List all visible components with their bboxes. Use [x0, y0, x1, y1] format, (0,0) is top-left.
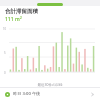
- button[interactable]: Selected tab indicator: [37, 3, 63, 6]
- other: Record icon: [5, 92, 10, 97]
- button[interactable]: Bar chart of recent 30 records: [0, 26, 100, 80]
- other: Open details: [90, 92, 95, 97]
- staticText: 5: [4, 51, 6, 55]
- staticText: 111 m: [5, 16, 20, 23]
- staticText: 0: [4, 71, 6, 75]
- staticText: 10: [3, 27, 7, 31]
- staticText: 2: [20, 16, 22, 20]
- staticText: 最近30件の記録: [0, 82, 100, 87]
- button[interactable]: Record icon: [0, 88, 100, 100]
- staticText: 昨日 3:00 午後: [13, 91, 41, 97]
- staticText: 合計滞留面積: [5, 8, 38, 15]
